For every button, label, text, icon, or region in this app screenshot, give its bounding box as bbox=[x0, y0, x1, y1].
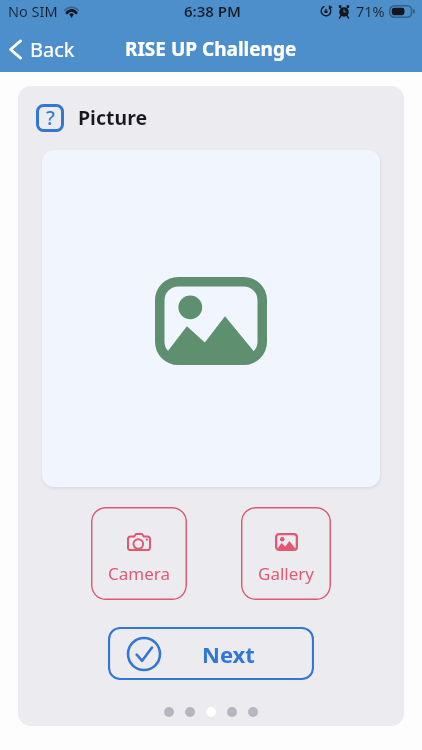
button[interactable]: Page 4 bbox=[227, 707, 237, 717]
staticText: Next bbox=[202, 639, 255, 669]
button[interactable]: Page 1 bbox=[164, 707, 174, 717]
button[interactable]: Camera bbox=[91, 507, 187, 600]
button[interactable]: Next bbox=[108, 627, 314, 680]
staticText: 71% bbox=[356, 1, 385, 21]
button[interactable]: Page 5 bbox=[248, 707, 258, 717]
staticText: Gallery bbox=[258, 562, 314, 585]
staticText: No SIM bbox=[8, 1, 58, 21]
button[interactable]: Page 2 bbox=[185, 707, 195, 717]
staticText: 6:38 PM bbox=[184, 1, 241, 21]
staticText: Picture bbox=[78, 104, 148, 131]
button[interactable]: Help bbox=[36, 104, 64, 132]
staticText: ? bbox=[46, 104, 55, 131]
staticText: Camera bbox=[108, 562, 170, 585]
button[interactable]: Back bbox=[0, 28, 89, 71]
staticText: RISE UP Challenge bbox=[125, 36, 297, 62]
button[interactable]: Selected picture bbox=[42, 150, 380, 487]
button[interactable]: Page 3 bbox=[206, 707, 216, 717]
staticText: Back bbox=[30, 36, 75, 63]
button[interactable]: Gallery bbox=[241, 507, 331, 600]
